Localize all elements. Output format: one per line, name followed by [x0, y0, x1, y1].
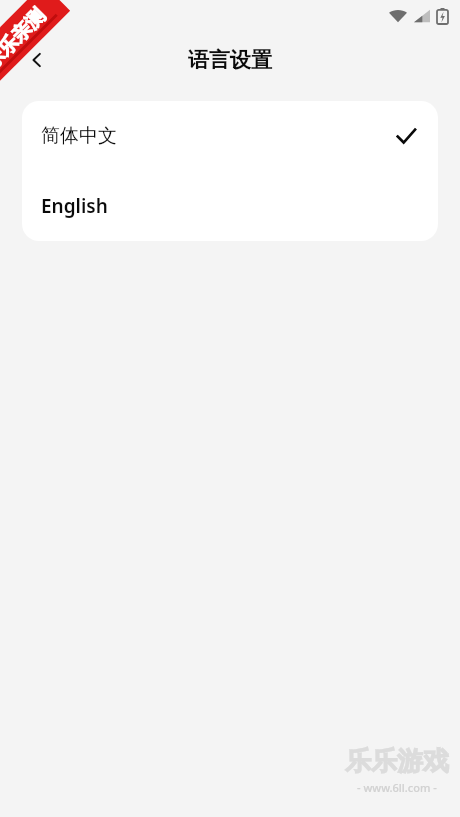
button[interactable]: English [22, 171, 438, 241]
staticText: 乐乐游戏 [345, 745, 449, 778]
staticText: 乐乐亲测 [0, 4, 50, 74]
staticText: 简体中文 [41, 124, 117, 148]
button[interactable]: Back [14, 37, 60, 83]
staticText: English [41, 193, 108, 219]
staticText: 语言设置 [188, 47, 272, 73]
staticText: - www.6ll.com - [357, 780, 437, 795]
button[interactable]: 简体中文 [22, 101, 438, 171]
